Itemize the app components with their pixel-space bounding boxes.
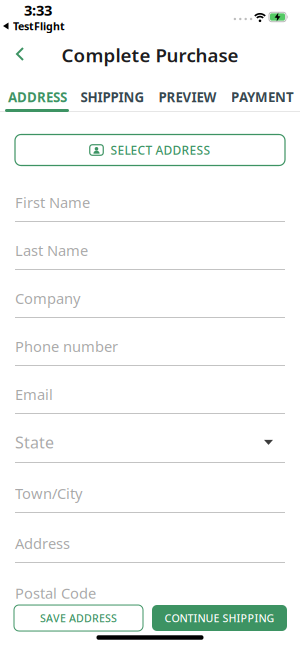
button[interactable]: Postal Code	[15, 580, 285, 606]
staticText: SAVE ADDRESS	[40, 611, 117, 625]
staticText: Address	[15, 533, 70, 553]
button[interactable]: Back	[5, 39, 35, 69]
button[interactable]: SELECT ADDRESS	[15, 134, 285, 165]
button[interactable]: Company	[15, 270, 285, 318]
staticText: SELECT ADDRESS	[110, 142, 210, 158]
button[interactable]: Town/City	[15, 463, 285, 513]
button[interactable]: ADDRESS	[0, 85, 75, 109]
staticText: PAYMENT	[231, 88, 294, 106]
button[interactable]: SAVE ADDRESS	[14, 605, 143, 631]
button[interactable]: PAYMENT	[225, 85, 300, 109]
staticText: ADDRESS	[8, 88, 67, 106]
staticText: TestFlight	[13, 19, 65, 33]
button[interactable]: SHIPPING	[75, 85, 150, 109]
button[interactable]: Address	[15, 513, 285, 563]
staticText: Phone number	[15, 336, 118, 356]
staticText: State	[15, 432, 54, 453]
staticText: Town/City	[15, 483, 82, 503]
button[interactable]: Last Name	[15, 222, 285, 270]
staticText: Complete Purchase	[61, 43, 238, 67]
staticText: First Name	[15, 192, 90, 212]
button[interactable]: State	[15, 414, 285, 463]
button[interactable]: Phone number	[15, 318, 285, 366]
button[interactable]: CONTINUE SHIPPING	[152, 605, 287, 631]
staticText: PREVIEW	[158, 88, 216, 106]
staticText: Company	[15, 288, 80, 308]
button[interactable]: PREVIEW	[150, 85, 225, 109]
staticText: Last Name	[15, 240, 88, 260]
staticText: Email	[15, 384, 53, 404]
button[interactable]: First Name	[15, 174, 285, 222]
staticText: SHIPPING	[80, 88, 144, 106]
staticText: 3:33	[24, 0, 52, 20]
button[interactable]: Email	[15, 366, 285, 414]
staticText: CONTINUE SHIPPING	[164, 611, 274, 625]
staticText: Postal Code	[15, 583, 96, 603]
